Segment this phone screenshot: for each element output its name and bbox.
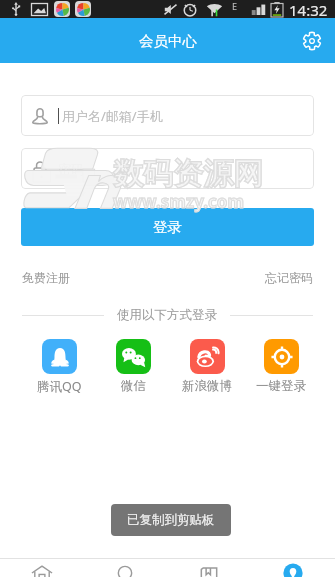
button[interactable]: 登录	[21, 208, 314, 246]
staticText: 新浪微博	[182, 378, 232, 394]
staticText: 14:32	[289, 0, 328, 18]
button[interactable]: 微信	[96, 339, 170, 394]
button[interactable]: 用户名/邮箱/手机	[21, 95, 314, 136]
staticText: 密码	[58, 161, 84, 177]
staticText: 会员中心	[139, 32, 197, 50]
staticText: www.smzy.com	[113, 190, 245, 213]
button[interactable]: Discover	[83, 559, 167, 577]
staticText: 登录	[153, 218, 182, 236]
button[interactable]: 腾讯QQ	[22, 339, 96, 395]
staticText: 微信	[121, 378, 146, 394]
staticText: 数码资源网	[113, 155, 263, 193]
button[interactable]: 新浪微博	[170, 339, 244, 394]
staticText: 用户名/邮箱/手机	[62, 107, 163, 125]
button[interactable]: Library	[167, 559, 251, 577]
staticText: 腾讯QQ	[37, 378, 82, 395]
button[interactable]: Settings	[297, 26, 327, 56]
staticText: E	[232, 0, 238, 12]
button[interactable]: Profile	[251, 559, 335, 577]
button[interactable]: 密码	[21, 148, 314, 189]
button[interactable]: 免费注册	[22, 270, 70, 285]
staticText: www.smzy.com	[113, 190, 245, 213]
staticText: 已复制到剪贴板	[127, 512, 215, 528]
staticText: 使用以下方式登录	[117, 307, 217, 323]
staticText: 忘记密码	[265, 270, 313, 285]
button[interactable]: 忘记密码	[265, 270, 313, 285]
button[interactable]: Home	[0, 559, 83, 577]
staticText: 数码资源网	[113, 155, 263, 193]
button[interactable]: 一键登录	[244, 339, 318, 394]
staticText: 免费注册	[22, 270, 70, 285]
staticText: 一键登录	[256, 378, 306, 394]
